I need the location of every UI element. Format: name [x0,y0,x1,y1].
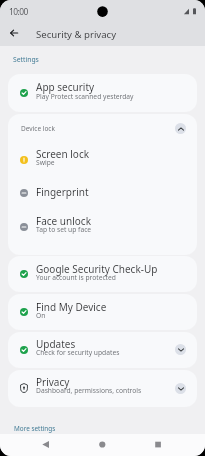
button[interactable]: Updates [8,332,197,368]
button[interactable]: Face unlock [8,210,197,244]
button[interactable]: Screen lock [8,143,197,177]
button[interactable]: Google Security Check-Up [8,256,197,292]
staticText: Swipe [36,158,55,167]
button[interactable]: Settings [10,53,42,66]
staticText: Play Protect scanned yesterday [36,92,134,101]
button[interactable]: Expand Updates [175,344,186,355]
button[interactable]: Fingerprint [8,176,197,210]
staticText: Updates [36,337,76,351]
button[interactable]: Device lock [8,114,197,143]
staticText: App security [36,80,95,94]
button[interactable]: Privacy [8,370,197,407]
staticText: Device lock [21,124,175,133]
staticText: Check for security updates [36,348,120,357]
staticText: Tap to set up face [36,225,92,234]
staticText: Face unlock [36,214,91,228]
button[interactable]: Collapse Device lock [175,123,186,134]
staticText: Fingerprint [36,185,89,199]
staticText: Your account is protected [36,273,116,282]
staticText: 10:00 [9,6,28,17]
button[interactable]: App security [8,74,197,112]
staticText: Dashboard, permissions, controls [36,386,142,395]
staticText: On [36,311,46,320]
staticText: Privacy [36,375,70,389]
button[interactable]: Find My Device [8,294,197,330]
button[interactable]: Back [35,434,59,456]
staticText: Google Security Check-Up [36,262,158,276]
button[interactable]: Back [6,25,22,41]
staticText: Settings [13,55,39,64]
staticText: Find My Device [36,300,107,314]
staticText: Screen lock [36,147,90,161]
staticText: More settings [14,424,56,433]
button[interactable]: More settings [11,422,59,435]
staticText: Security & privacy [36,28,117,41]
button[interactable]: Expand Privacy [175,383,186,394]
